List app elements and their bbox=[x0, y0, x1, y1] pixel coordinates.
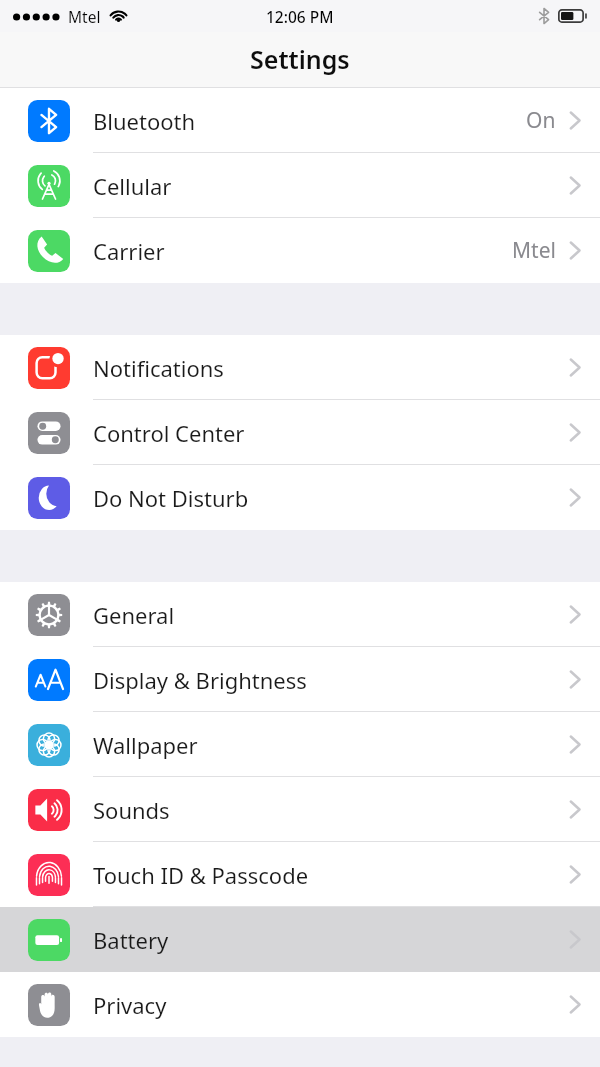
button[interactable]: Do Not Disturb bbox=[0, 465, 600, 530]
button[interactable]: Cellular settings bbox=[0, 153, 600, 218]
staticText: Do Not Disturb bbox=[93, 483, 249, 513]
staticText: Control Center bbox=[93, 418, 245, 448]
staticText: General bbox=[93, 600, 175, 630]
staticText: Carrier bbox=[93, 236, 165, 266]
button[interactable]: Privacy bbox=[0, 972, 600, 1037]
button[interactable]: Sounds bbox=[0, 777, 600, 842]
staticText: Display & Brightness bbox=[93, 665, 307, 695]
staticText: Sounds bbox=[93, 795, 170, 825]
button[interactable]: Touch ID bbox=[0, 842, 600, 907]
staticText: On bbox=[526, 106, 556, 135]
staticText: Wallpaper bbox=[93, 730, 198, 760]
staticText: Notifications bbox=[93, 353, 224, 383]
button[interactable]: Wallpaper bbox=[0, 712, 600, 777]
staticText: Cellular bbox=[93, 171, 172, 201]
staticText: 12:06 PM bbox=[266, 6, 334, 27]
staticText: Bluetooth bbox=[93, 106, 196, 136]
staticText: Touch ID & Passcode bbox=[93, 860, 309, 890]
staticText: Mtel bbox=[512, 236, 556, 265]
staticText: Settings bbox=[250, 42, 350, 76]
button[interactable]: Carrier settings bbox=[0, 218, 600, 283]
button[interactable]: Control Center bbox=[0, 400, 600, 465]
staticText: Mtel bbox=[68, 6, 101, 27]
button[interactable]: General bbox=[0, 582, 600, 647]
staticText: Privacy bbox=[93, 990, 167, 1020]
staticText: Battery bbox=[93, 925, 169, 955]
button[interactable]: Display bbox=[0, 647, 600, 712]
button[interactable]: Bluetooth settings bbox=[0, 88, 600, 153]
button[interactable]: Battery bbox=[0, 907, 600, 972]
button[interactable]: Notifications bbox=[0, 335, 600, 400]
